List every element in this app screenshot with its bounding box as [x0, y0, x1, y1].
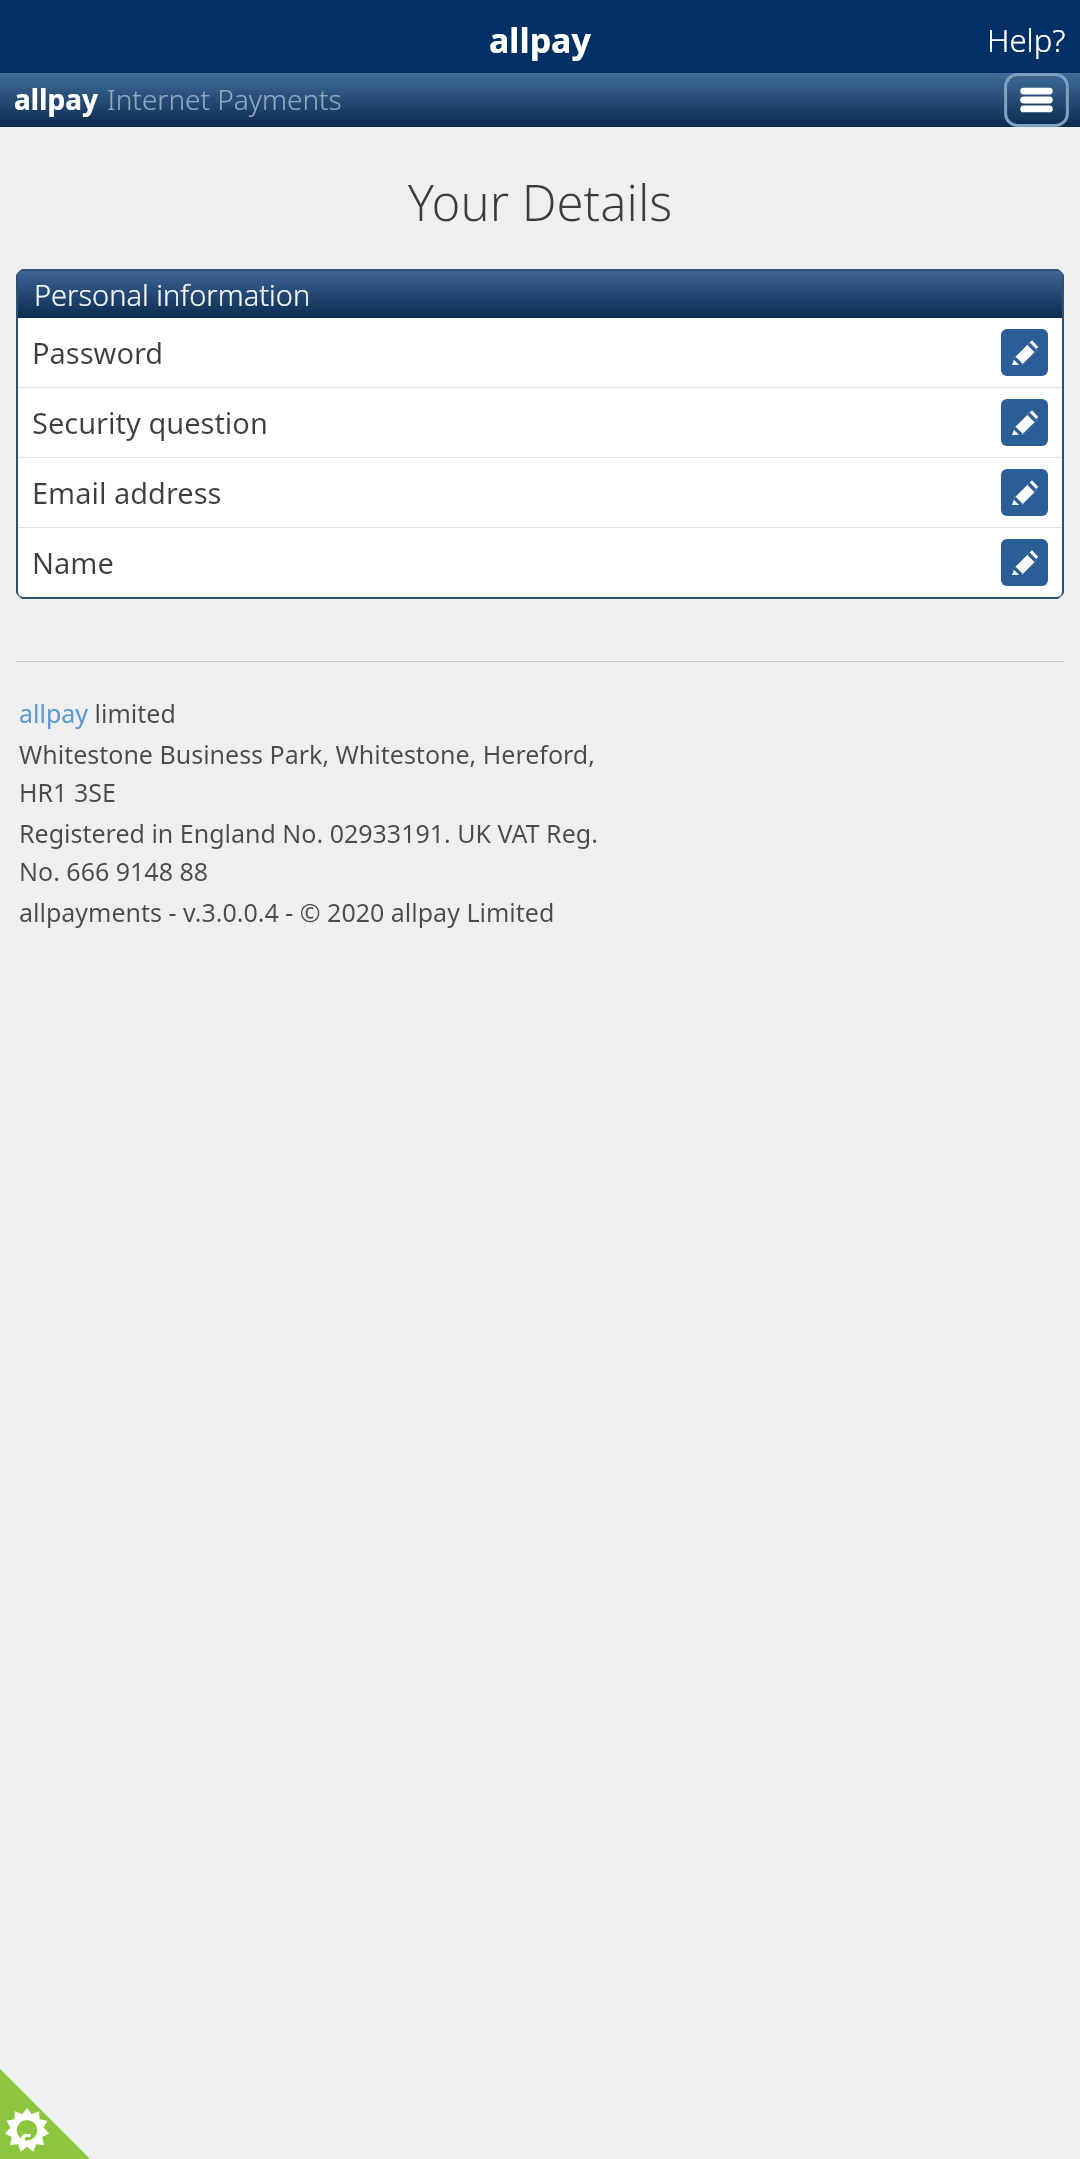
button[interactable]: Name — [18, 528, 1062, 597]
staticText: Internet Payments — [107, 80, 342, 118]
staticText: c — [20, 2122, 32, 2152]
button[interactable]: Cookie settings — [0, 2069, 90, 2159]
staticText: Your Details — [0, 169, 1080, 236]
button[interactable]: Security question — [18, 388, 1062, 457]
button[interactable]: Edit Password — [1001, 329, 1048, 376]
staticText: Name — [32, 543, 1001, 582]
staticText: Whitestone Business Park, Whitestone, He… — [19, 737, 595, 809]
button[interactable]: Email address — [18, 458, 1062, 527]
button[interactable]: Edit Security question — [1001, 399, 1048, 446]
staticText: Personal information — [34, 275, 311, 314]
staticText: Password — [32, 333, 1001, 372]
staticText: allpay limited — [19, 696, 176, 730]
staticText: Security question — [32, 403, 1001, 442]
button[interactable]: Edit Name — [1001, 539, 1048, 586]
staticText: Registered in England No. 02933191. UK V… — [19, 816, 598, 888]
staticText: allpay — [14, 80, 98, 118]
staticText: allpayments - v.3.0.0.4 - © 2020 allpay … — [19, 895, 555, 929]
button[interactable]: Open menu — [1004, 73, 1069, 127]
staticText: Help? — [987, 19, 1066, 61]
button[interactable]: Help? — [973, 11, 1080, 69]
button[interactable]: Password — [18, 318, 1062, 387]
button[interactable]: Edit Email address — [1001, 469, 1048, 516]
staticText: Email address — [32, 473, 1001, 512]
staticText: allpay — [489, 17, 591, 63]
